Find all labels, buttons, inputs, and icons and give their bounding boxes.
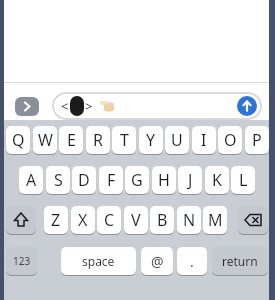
- button[interactable]: S: [46, 166, 70, 194]
- button[interactable]: P: [245, 126, 269, 154]
- staticText: J: [188, 169, 193, 191]
- button[interactable]: [237, 96, 257, 116]
- button[interactable]: 123: [6, 247, 37, 275]
- staticText: F: [107, 169, 116, 191]
- button[interactable]: [238, 206, 268, 234]
- staticText: T: [120, 129, 129, 151]
- button[interactable]: A: [19, 166, 43, 194]
- button[interactable]: L: [231, 166, 255, 194]
- button[interactable]: F: [99, 166, 123, 194]
- button[interactable]: [6, 206, 36, 234]
- staticText: D: [78, 169, 90, 191]
- button[interactable]: H: [152, 166, 176, 194]
- staticText: space: [82, 253, 115, 269]
- staticText: U: [171, 129, 183, 151]
- button[interactable]: K: [205, 166, 229, 194]
- button[interactable]: G: [125, 166, 149, 194]
- button[interactable]: E: [59, 126, 83, 154]
- button[interactable]: I: [192, 126, 216, 154]
- staticText: L: [239, 169, 248, 191]
- button[interactable]: M: [203, 206, 227, 234]
- button[interactable]: J: [178, 166, 202, 194]
- staticText: return: [222, 253, 258, 269]
- staticText: @: [151, 252, 164, 271]
- button[interactable]: R: [86, 126, 110, 154]
- button[interactable]: C: [97, 206, 121, 234]
- button[interactable]: Q: [6, 126, 30, 154]
- staticText: E: [67, 129, 76, 151]
- button[interactable]: D: [72, 166, 96, 194]
- staticText: 123: [13, 254, 31, 268]
- staticText: <: [61, 97, 69, 115]
- button[interactable]: .: [177, 247, 207, 275]
- button[interactable]: B: [150, 206, 174, 234]
- button[interactable]: return: [212, 247, 268, 275]
- staticText: I: [201, 129, 207, 151]
- staticText: M: [208, 209, 223, 231]
- staticText: N: [183, 209, 196, 231]
- button[interactable]: N: [177, 206, 201, 234]
- staticText: A: [26, 169, 37, 191]
- staticText: B: [157, 209, 168, 231]
- button[interactable]: O: [218, 126, 242, 154]
- staticText: Z: [51, 209, 61, 231]
- staticText: X: [78, 209, 88, 231]
- button[interactable]: W: [33, 126, 57, 154]
- staticText: C: [104, 209, 115, 231]
- button[interactable]: [52, 92, 262, 120]
- button[interactable]: space: [61, 247, 136, 275]
- staticText: V: [131, 209, 141, 231]
- staticText: G: [131, 169, 143, 191]
- staticText: Y: [146, 129, 156, 151]
- button[interactable]: T: [112, 126, 136, 154]
- staticText: S: [54, 169, 63, 191]
- button[interactable]: Z: [44, 206, 68, 234]
- button[interactable]: [15, 97, 39, 116]
- button[interactable]: @: [141, 247, 173, 275]
- staticText: O: [224, 129, 237, 151]
- staticText: >: [85, 97, 93, 115]
- staticText: R: [93, 129, 103, 151]
- staticText: .: [190, 252, 194, 271]
- button[interactable]: X: [71, 206, 95, 234]
- button[interactable]: Y: [139, 126, 163, 154]
- staticText: H: [158, 169, 170, 191]
- staticText: K: [212, 169, 222, 191]
- staticText: Q: [12, 129, 25, 151]
- staticText: P: [252, 129, 262, 151]
- button[interactable]: U: [165, 126, 189, 154]
- staticText: W: [38, 129, 53, 151]
- button[interactable]: V: [124, 206, 148, 234]
